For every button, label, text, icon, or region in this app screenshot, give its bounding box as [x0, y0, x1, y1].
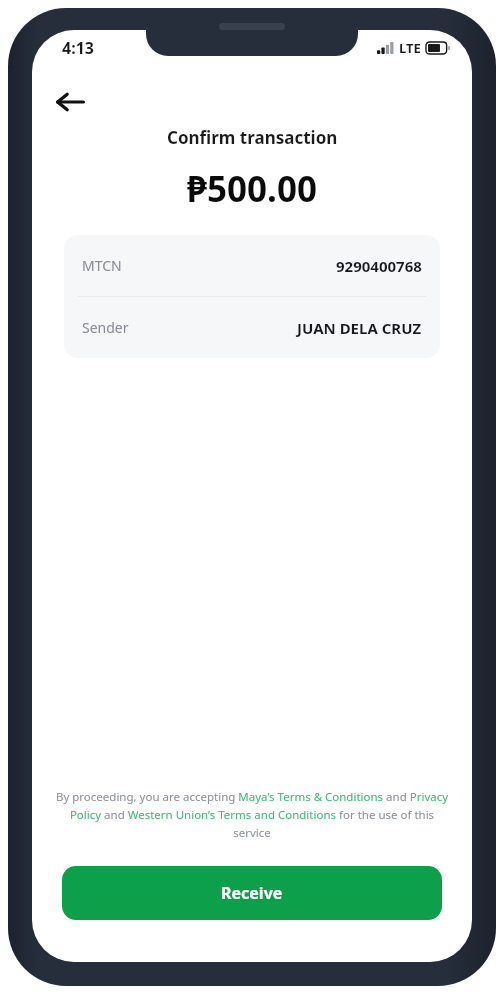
staticText: MTCN: [82, 256, 122, 275]
staticText: Sender: [82, 318, 129, 337]
staticText: Receive: [221, 882, 283, 904]
staticText: Confirm transaction: [167, 126, 338, 149]
staticText: 4:13: [62, 37, 94, 59]
staticText: JUAN DELA CRUZ: [297, 318, 422, 338]
staticText: ₱500.00: [187, 165, 317, 213]
button[interactable]: Back: [46, 78, 94, 126]
button[interactable]: MTCN: [64, 235, 440, 296]
staticText: 9290400768: [336, 256, 422, 276]
button[interactable]: Sender: [64, 297, 440, 358]
button[interactable]: By proceeding, you are accepting Maya’s …: [54, 789, 450, 840]
staticText: LTE: [399, 39, 421, 57]
button[interactable]: Receive: [62, 866, 442, 920]
